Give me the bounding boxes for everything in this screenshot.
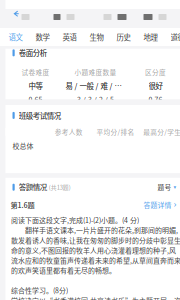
staticText: 最高分/学生 xyxy=(143,127,180,137)
staticText: 试卷难度 xyxy=(21,67,49,77)
staticText: 易 / 一般 / 难 / 较难 xyxy=(65,80,125,91)
staticText: 数学 xyxy=(35,32,49,42)
button[interactable]: 英语 xyxy=(56,29,83,45)
button[interactable]: 道德 xyxy=(164,29,180,45)
button[interactable]: 题号 xyxy=(157,182,180,192)
button[interactable]: 数学 xyxy=(29,29,56,45)
staticText: 3 / 3 / 2 / 5 xyxy=(77,95,114,105)
staticText: 参考人数 xyxy=(55,127,83,137)
staticText: 道德 xyxy=(170,32,180,42)
staticText: ▾ xyxy=(173,184,176,190)
staticText: 卷面分析 xyxy=(19,47,47,58)
button[interactable]: 生物 xyxy=(83,29,110,45)
staticText: 小题难度数量 xyxy=(74,67,116,77)
staticText: 0.76 xyxy=(148,95,162,105)
staticText: 很好 xyxy=(148,80,162,91)
staticText: 区分度 xyxy=(145,67,166,77)
button[interactable]: 语文 xyxy=(2,29,29,45)
button[interactable]: 答题详情 xyxy=(143,200,180,210)
staticText: (共13题) xyxy=(49,183,71,191)
staticText: 阅读下面这段文字,完成(1)-(2)小题。(4 分) 翻样手语文课本,一片片盛开… xyxy=(11,215,180,300)
staticText: 语文 xyxy=(8,32,22,42)
button[interactable]: 历史 xyxy=(110,29,137,45)
staticText: 答题情况 xyxy=(19,182,47,193)
staticText: 校总体 xyxy=(12,141,33,151)
staticText: › xyxy=(173,200,176,209)
staticText: 生物 xyxy=(89,32,103,42)
staticText: 班级考试情况 xyxy=(19,110,61,121)
staticText: 中等 xyxy=(28,80,42,91)
staticText: 英语 xyxy=(62,32,76,42)
staticText: 题号 xyxy=(157,182,171,192)
staticText: 平均分/排名 xyxy=(96,127,134,137)
staticText: 历史 xyxy=(116,32,130,42)
button[interactable]: 地理 xyxy=(137,29,164,45)
staticText: 地理 xyxy=(143,32,157,42)
staticText: 0.65 xyxy=(28,95,42,105)
staticText: 第1.6题 xyxy=(10,200,34,210)
staticText: 答题详情 xyxy=(143,200,171,210)
